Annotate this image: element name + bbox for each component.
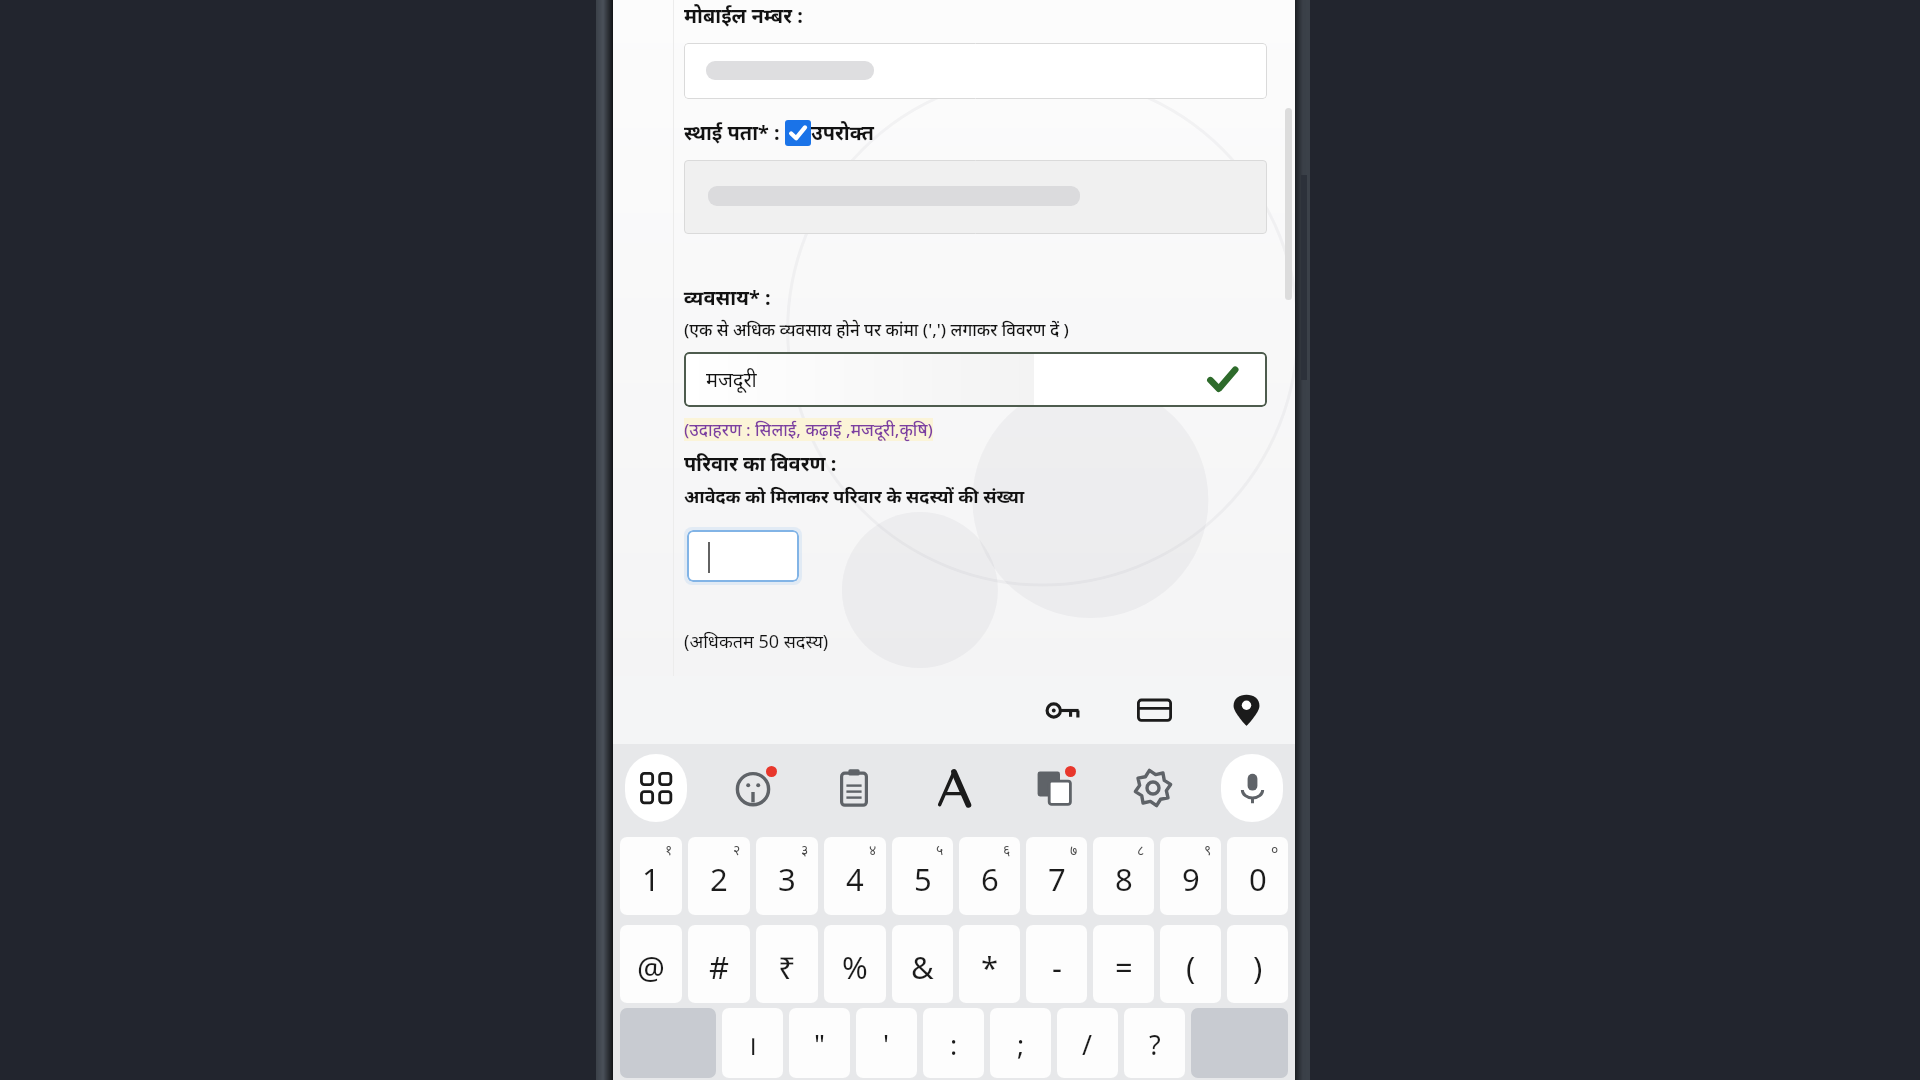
button[interactable]: Toolbox (625, 754, 687, 822)
button[interactable]: Clipboard (822, 756, 886, 820)
staticText: ० (1271, 840, 1279, 859)
staticText: ( (1186, 946, 1196, 988)
staticText: * (981, 946, 999, 988)
button[interactable]: Addresses (1223, 687, 1269, 733)
staticText: मोबाईल नम्बर : (684, 2, 803, 29)
button[interactable] (687, 530, 799, 582)
staticText: स्थाई पता* : (684, 119, 785, 146)
staticText: # (709, 946, 730, 988)
staticText: ८ (1137, 840, 1145, 859)
button[interactable]: 9 (1160, 837, 1221, 915)
staticText: & (911, 946, 934, 988)
button[interactable]: ₹ (756, 925, 818, 1003)
button[interactable]: Payment methods (1131, 687, 1177, 733)
staticText: परिवार का विवरण : (684, 450, 837, 477)
button[interactable]: उपरोक्त (785, 120, 811, 146)
button[interactable]: ( (1160, 925, 1221, 1003)
button[interactable] (684, 43, 1267, 99)
staticText: 6 (981, 858, 999, 900)
button[interactable]: % (824, 925, 886, 1003)
staticText: २ (733, 840, 741, 859)
button[interactable]: ' (856, 1008, 917, 1078)
staticText: ; (1017, 1026, 1025, 1063)
button[interactable]: Text editing (922, 756, 986, 820)
button[interactable]: Settings (1121, 756, 1185, 820)
button[interactable]: 4 (824, 837, 886, 915)
button[interactable]: ? (1124, 1008, 1185, 1078)
staticText: 5 (914, 858, 932, 900)
staticText: 4 (846, 858, 864, 900)
staticText: 3 (778, 858, 796, 900)
staticText: ७ (1070, 840, 1078, 859)
button[interactable]: 2 (688, 837, 750, 915)
staticText: : (950, 1026, 958, 1063)
staticText: @ (637, 946, 665, 988)
staticText: । (747, 1026, 758, 1063)
staticText: आवेदक को मिलाकर परिवार के सदस्यों की संख… (684, 484, 1025, 509)
staticText: 9 (1182, 858, 1200, 900)
staticText: ₹ (778, 946, 796, 988)
staticText: 2 (710, 858, 728, 900)
button[interactable]: Voice input (1221, 754, 1283, 822)
staticText: = (1115, 946, 1133, 988)
staticText: 7 (1048, 858, 1066, 900)
button[interactable]: & (892, 925, 953, 1003)
button[interactable]: " (789, 1008, 850, 1078)
staticText: 1 (642, 858, 660, 900)
button[interactable]: मजदूरी (684, 352, 1267, 407)
staticText: 0 (1249, 858, 1267, 900)
button[interactable] (684, 160, 1267, 234)
staticText: ६ (1003, 840, 1011, 859)
staticText: ३ (801, 840, 809, 859)
staticText: 8 (1115, 858, 1133, 900)
button[interactable]: 7 (1026, 837, 1087, 915)
button[interactable]: / (1057, 1008, 1118, 1078)
button[interactable]: - (1026, 925, 1087, 1003)
staticText: - (1052, 946, 1062, 988)
staticText: व्यवसाय* : (684, 284, 771, 311)
button[interactable]: 3 (756, 837, 818, 915)
staticText: % (842, 946, 868, 988)
staticText: " (814, 1026, 826, 1063)
button[interactable]: # (688, 925, 750, 1003)
button[interactable]: 5 (892, 837, 953, 915)
staticText: मजदूरी (706, 366, 757, 393)
staticText: ' (883, 1026, 890, 1063)
staticText: / (1082, 1026, 1093, 1063)
button[interactable]: 8 (1093, 837, 1154, 915)
button[interactable]: 6 (959, 837, 1020, 915)
button[interactable]: * (959, 925, 1020, 1003)
staticText: (अधिकतम 50 सदस्य) (684, 629, 829, 654)
button[interactable]: @ (620, 925, 682, 1003)
button[interactable]: : (923, 1008, 984, 1078)
staticText: (एक से अधिक व्यवसाय होने पर कांमा (',') … (684, 318, 1069, 341)
button[interactable]: Emoji (723, 756, 787, 820)
staticText: १ (665, 840, 673, 859)
button[interactable]: = (1093, 925, 1154, 1003)
button[interactable]: । (722, 1008, 783, 1078)
staticText: ) (1253, 946, 1263, 988)
button[interactable]: Passwords (1039, 687, 1085, 733)
staticText: ९ (1204, 840, 1212, 859)
staticText: (उदाहरण : सिलाई, कढ़ाई ,मजदूरी,कृषि) (684, 418, 933, 441)
staticText: ? (1149, 1026, 1161, 1063)
button[interactable]: 0 (1227, 837, 1288, 915)
button[interactable]: ) (1227, 925, 1288, 1003)
staticText: ५ (936, 840, 944, 859)
button[interactable]: ; (990, 1008, 1051, 1078)
button[interactable]: 1 (620, 837, 682, 915)
staticText: ४ (869, 840, 877, 859)
button[interactable]: Translate (1022, 756, 1086, 820)
staticText: उपरोक्त (811, 119, 874, 146)
